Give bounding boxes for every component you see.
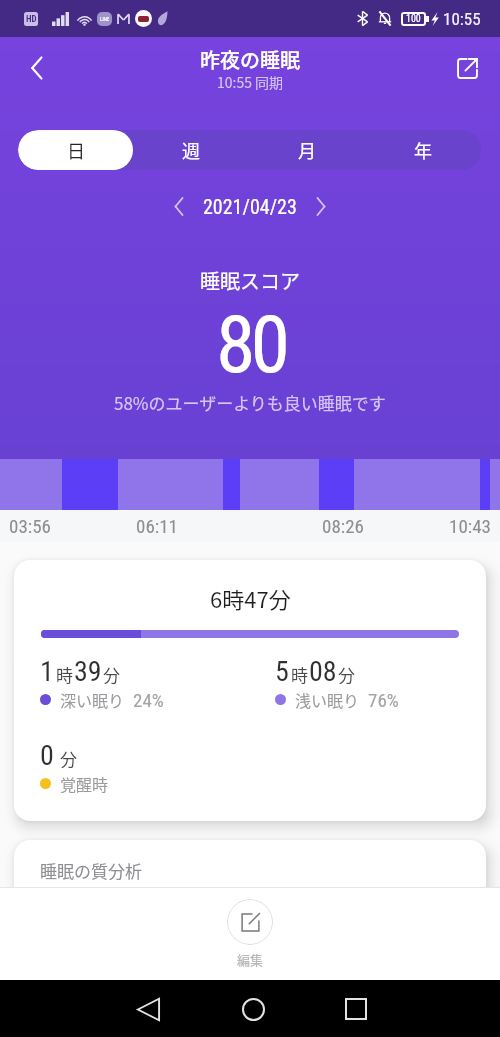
staticText: 100 [406, 13, 421, 25]
button[interactable]: Back [15, 46, 59, 90]
staticText: 1 [40, 655, 54, 688]
staticText: 分 [60, 746, 77, 771]
staticText: 日 [67, 137, 85, 163]
button[interactable]: 日 [18, 130, 133, 170]
staticText: 08 [309, 655, 337, 688]
staticText: 10:55 同期 [217, 72, 284, 92]
staticText: 06:11 [136, 515, 178, 537]
button[interactable]: Home [228, 984, 278, 1034]
button[interactable]: Share [445, 46, 489, 90]
staticText: 週 [182, 137, 200, 163]
staticText: 月 [298, 137, 316, 163]
staticText: 編集 [237, 950, 264, 969]
staticText: 昨夜の睡眠 [200, 45, 300, 74]
staticText: 時 [56, 662, 73, 687]
staticText: HD [26, 14, 37, 25]
staticText: LINE [100, 16, 110, 22]
staticText: 浅い眠り [295, 688, 360, 711]
button[interactable]: 週 [133, 130, 249, 170]
staticText: 10:55 [443, 9, 481, 29]
staticText: 深い眠り [60, 688, 125, 711]
button[interactable]: 年 [365, 130, 481, 170]
staticText: 39 [74, 655, 102, 688]
staticText: 03:56 [9, 515, 51, 537]
staticText: 58%のユーザーよりも良い睡眠です [114, 390, 386, 415]
button[interactable]: 月 [249, 130, 365, 170]
staticText: 76% [368, 689, 399, 711]
button[interactable]: Previous day [160, 187, 198, 225]
button[interactable]: 6時47分 [14, 560, 486, 821]
button[interactable]: Back [123, 984, 173, 1034]
staticText: 08:26 [322, 515, 364, 537]
staticText: 10:43 [449, 515, 491, 537]
staticText: 時 [291, 662, 308, 687]
staticText: 0 [40, 739, 54, 772]
button[interactable]: Next day [302, 187, 340, 225]
button[interactable]: 睡眠の質分析 [14, 840, 486, 960]
staticText: 24% [133, 689, 164, 711]
staticText: 分 [103, 662, 120, 687]
staticText: 2021/04/23 [203, 195, 297, 218]
staticText: 覚醒時 [60, 772, 109, 795]
staticText: 80 [216, 298, 285, 392]
staticText: 6時47分 [210, 582, 291, 614]
staticText: 5 [275, 655, 289, 688]
button[interactable]: 編集 [207, 893, 293, 975]
staticText: 睡眠の質分析 [40, 858, 142, 883]
staticText: 分 [338, 662, 355, 687]
button[interactable]: Recents [331, 984, 381, 1034]
staticText: 睡眠スコア [200, 266, 300, 295]
staticText: 年 [414, 137, 432, 163]
